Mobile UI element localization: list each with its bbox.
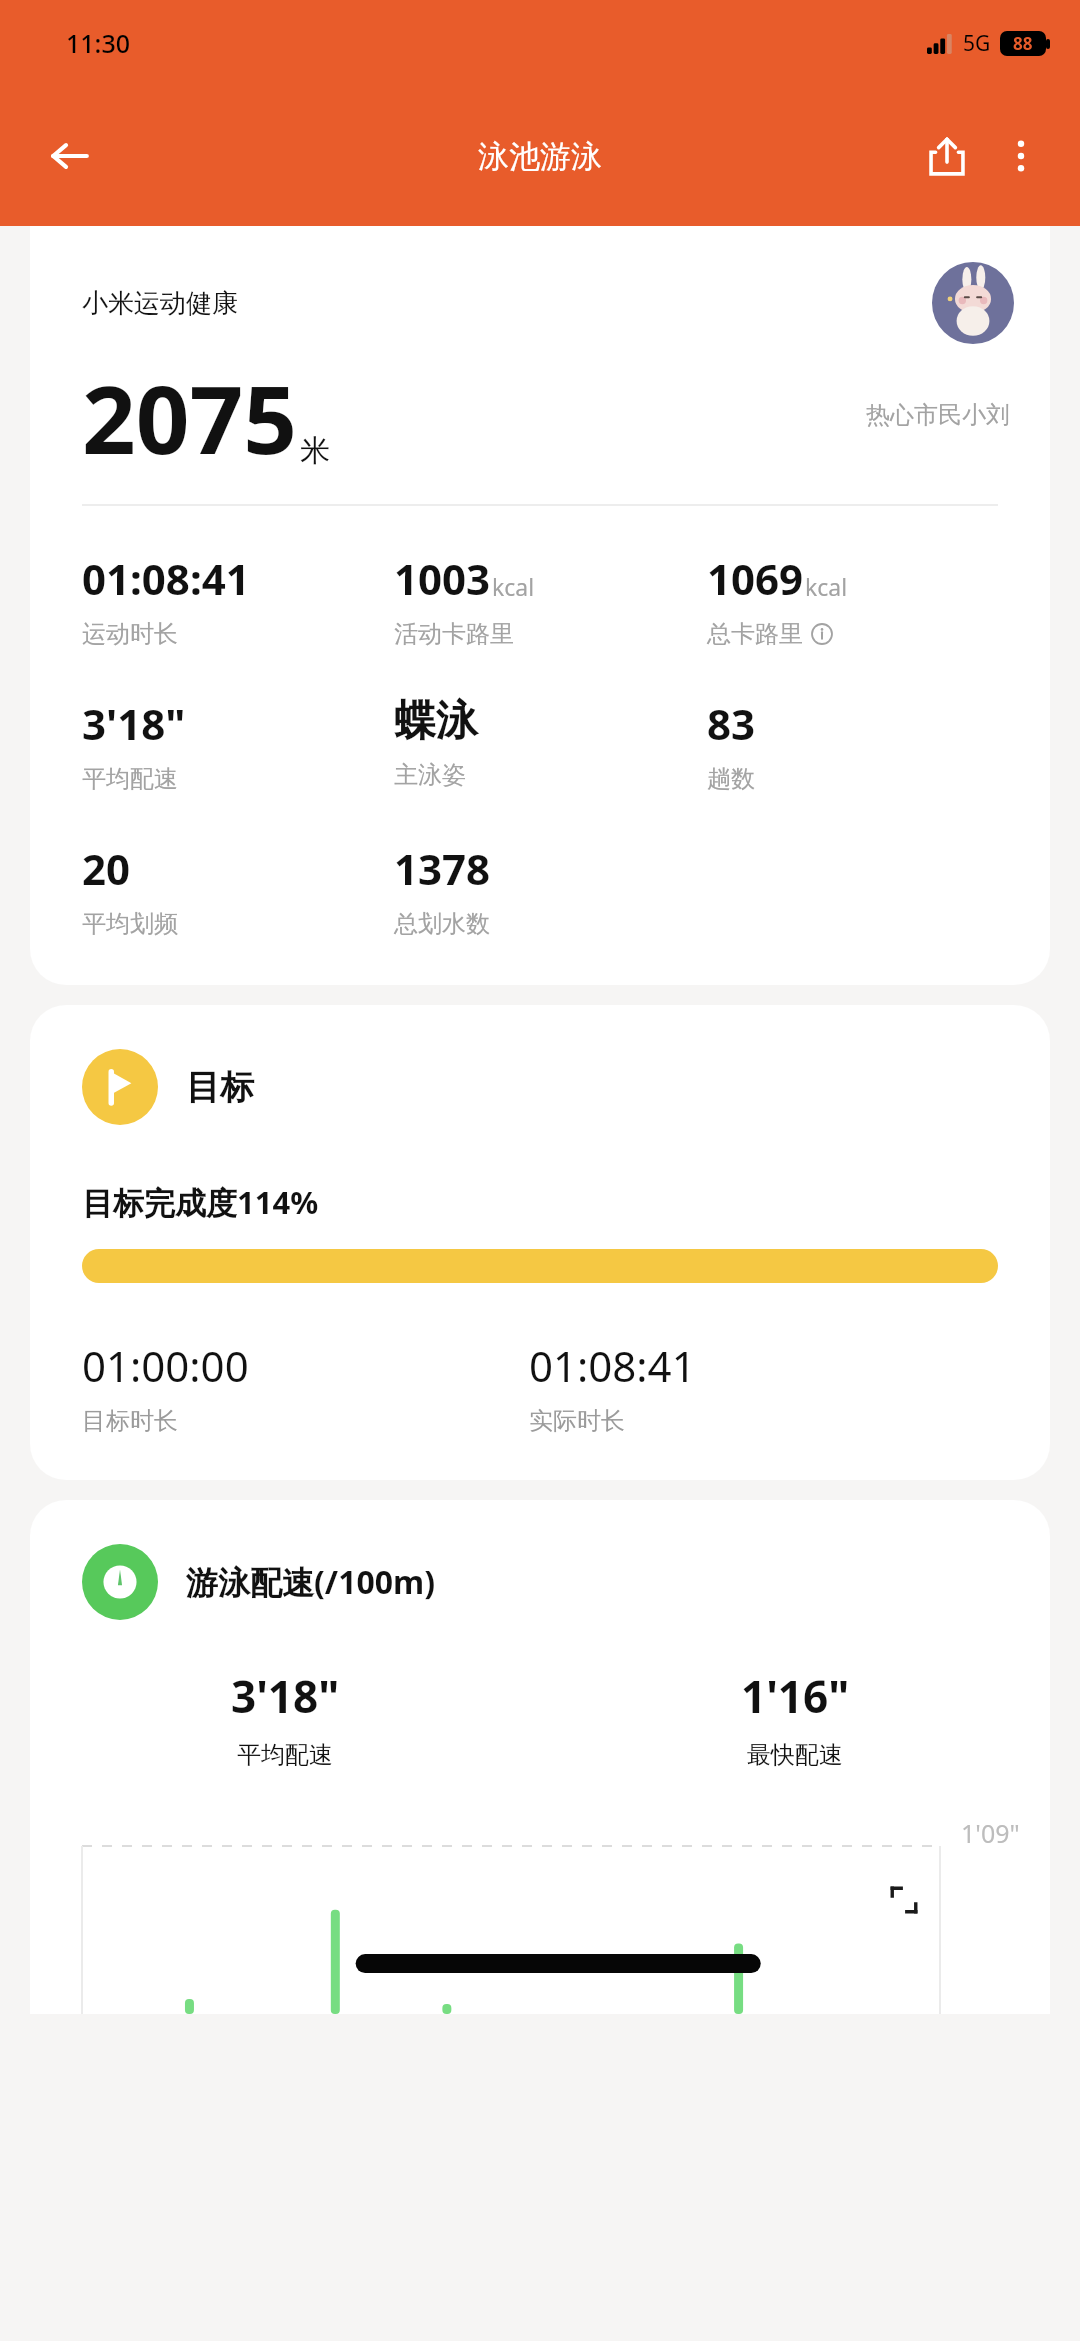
staticText: 总卡路里 bbox=[707, 619, 803, 649]
button[interactable]: 目标 bbox=[30, 1005, 1050, 1480]
staticText: 目标时长 bbox=[82, 1406, 178, 1436]
staticText: 热心市民小刘 bbox=[866, 400, 1010, 430]
staticText: kcal bbox=[492, 571, 535, 602]
staticText: 1'09" bbox=[961, 1816, 1020, 1850]
staticText: 20 bbox=[82, 840, 131, 897]
staticText: 1378 bbox=[394, 840, 491, 897]
staticText: 1003 bbox=[394, 550, 491, 607]
staticText: 平均划频 bbox=[82, 909, 178, 939]
staticText: 主泳姿 bbox=[394, 760, 466, 790]
staticText: 01:08:41 bbox=[529, 1337, 696, 1394]
button[interactable]: 游泳配速(/100m) bbox=[30, 1500, 1050, 2014]
staticText: 目标 bbox=[186, 1066, 254, 1109]
staticText: 平均配速 bbox=[237, 1740, 333, 1770]
staticText: 游泳配速(/100m) bbox=[186, 1560, 436, 1604]
staticText: 总划水数 bbox=[394, 909, 490, 939]
staticText: 趟数 bbox=[707, 764, 755, 794]
button[interactable]: Share bbox=[910, 119, 984, 193]
staticText: 活动卡路里 bbox=[394, 619, 514, 649]
staticText: 小米运动健康 bbox=[82, 287, 238, 320]
staticText: 83 bbox=[707, 695, 756, 752]
staticText: kcal bbox=[805, 571, 848, 602]
staticText: 目标完成度114% bbox=[82, 1181, 319, 1223]
staticText: 01:08:41 bbox=[82, 550, 250, 607]
button[interactable]: Back bbox=[34, 120, 106, 192]
staticText: 01:00:00 bbox=[82, 1337, 249, 1394]
staticText: 5G bbox=[963, 29, 991, 58]
button[interactable]: Profile avatar bbox=[932, 262, 1014, 344]
staticText: 11:30 bbox=[66, 26, 131, 60]
button[interactable]: More options bbox=[984, 119, 1058, 193]
staticText: 米 bbox=[300, 432, 330, 470]
staticText: 运动时长 bbox=[82, 619, 178, 649]
staticText: 2075 bbox=[82, 354, 298, 482]
staticText: 1'16" bbox=[741, 1666, 850, 1726]
staticText: 3'18" bbox=[231, 1666, 340, 1726]
staticText: 1069 bbox=[707, 550, 804, 607]
staticText: 3'18" bbox=[82, 695, 186, 752]
staticText: 蝶泳 bbox=[394, 695, 478, 748]
staticText: 88 bbox=[1013, 32, 1033, 55]
staticText: 实际时长 bbox=[529, 1406, 625, 1436]
staticText: 平均配速 bbox=[82, 764, 178, 794]
staticText: 泳池游泳 bbox=[478, 137, 602, 176]
staticText: 最快配速 bbox=[747, 1740, 843, 1770]
button[interactable]: Fullscreen chart bbox=[870, 1866, 938, 1934]
